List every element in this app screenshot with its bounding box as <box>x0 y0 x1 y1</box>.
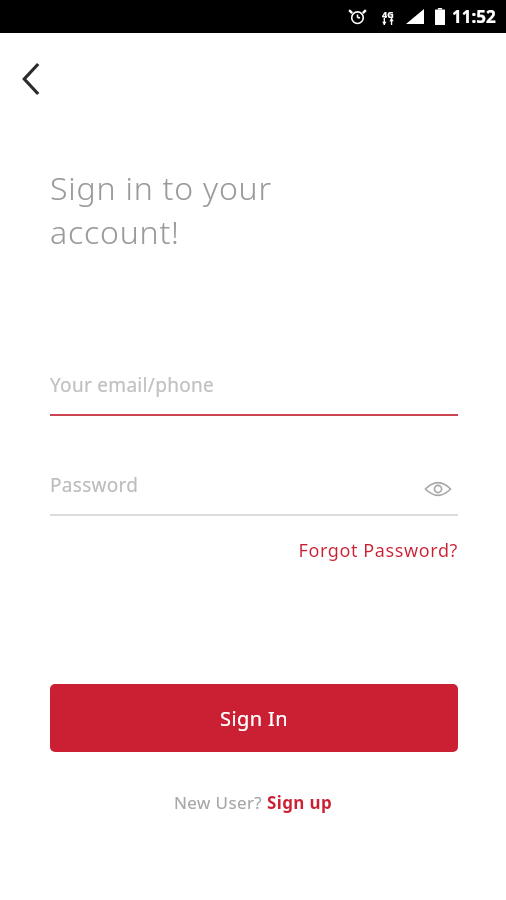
button[interactable]: Your email/phone <box>50 366 458 416</box>
button[interactable]: Forgot Password? <box>240 532 458 568</box>
staticText: account! <box>50 210 180 254</box>
button[interactable]: Password <box>50 466 458 516</box>
staticText: Forgot Password? <box>298 538 458 563</box>
staticText: 11:52 <box>452 5 496 28</box>
button[interactable]: Sign In <box>50 684 458 752</box>
staticText: Your email/phone <box>50 372 215 398</box>
button[interactable]: Show password <box>418 469 458 509</box>
staticText: Sign in to your <box>50 166 272 210</box>
staticText: New User? Sign up <box>174 791 333 814</box>
button[interactable]: Back <box>8 56 54 102</box>
button[interactable]: New User? Sign up <box>174 791 333 814</box>
staticText: 4G <box>382 8 394 20</box>
staticText: Password <box>50 472 139 498</box>
staticText: Sign In <box>220 705 288 732</box>
